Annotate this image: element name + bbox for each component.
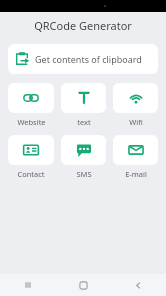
staticText: SMS <box>76 169 92 179</box>
button[interactable]: Back <box>111 274 166 296</box>
staticText: Get contents of clipboard <box>35 53 142 65</box>
button[interactable]: Get contents of clipboard <box>8 44 158 74</box>
staticText: QRCode Generator <box>34 18 132 33</box>
staticText: Wifi <box>129 117 143 127</box>
staticText: text <box>77 117 91 127</box>
button[interactable]: Recent apps <box>0 274 56 296</box>
staticText: Website <box>17 117 46 127</box>
button[interactable]: Home <box>56 274 111 296</box>
button[interactable]: SMS <box>61 135 106 179</box>
button[interactable]: E-mail <box>113 135 158 179</box>
staticText: Contact <box>17 169 45 179</box>
button[interactable]: Wifi <box>113 83 158 127</box>
button[interactable]: Website <box>8 83 54 127</box>
button[interactable]: Contact <box>8 135 54 179</box>
staticText: E-mail <box>125 169 147 179</box>
button[interactable]: text <box>61 83 106 127</box>
